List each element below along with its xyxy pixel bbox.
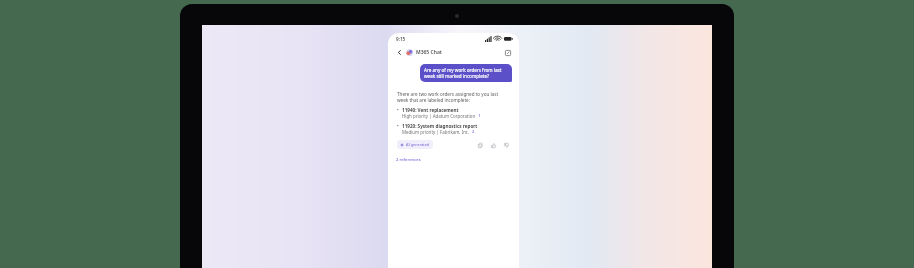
staticText: 2	[472, 129, 475, 135]
staticText: There are two work orders assigned to yo…	[397, 91, 510, 103]
staticText: M365 Chat	[416, 49, 442, 56]
button[interactable]: Are any of my work orders from last week…	[420, 64, 512, 82]
staticText: AI generated	[406, 142, 430, 147]
staticText: •	[397, 123, 399, 129]
button[interactable]: Back	[395, 48, 404, 57]
staticText: •	[397, 107, 399, 113]
button[interactable]: New chat	[503, 48, 512, 57]
staticText: Are any of my work orders from last week…	[424, 67, 508, 79]
button[interactable]: Dislike	[502, 141, 510, 149]
button[interactable]: Like	[489, 141, 497, 149]
staticText: 11920: System diagnostics report	[402, 123, 478, 129]
button[interactable]: AI generated	[397, 140, 433, 149]
staticText: High priority | Adatum Corporation	[402, 113, 476, 119]
staticText: 9:15	[396, 36, 406, 42]
button[interactable]: 2 references	[396, 157, 421, 163]
staticText: 1	[478, 113, 481, 119]
button[interactable]: Copy	[476, 141, 484, 149]
staticText: 11940: Vent replacement	[402, 107, 459, 113]
staticText: Medium priority | Fabrikam, Inc.	[402, 129, 470, 135]
